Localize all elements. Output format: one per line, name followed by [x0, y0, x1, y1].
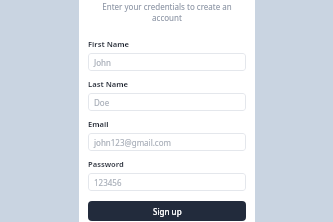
- staticText: Last Name: [88, 79, 129, 89]
- staticText: john123@gmail.com: [94, 137, 172, 148]
- button[interactable]: Doe: [88, 93, 246, 111]
- button[interactable]: John: [88, 53, 246, 71]
- button[interactable]: 123456: [88, 173, 246, 191]
- staticText: Doe: [94, 97, 110, 108]
- staticText: Password: [88, 159, 124, 169]
- staticText: John: [94, 57, 111, 68]
- staticText: Sign up: [153, 206, 182, 217]
- staticText: First Name: [88, 39, 130, 49]
- staticText: Email: [88, 119, 109, 129]
- button[interactable]: john123@gmail.com: [88, 133, 246, 151]
- staticText: 123456: [94, 177, 122, 188]
- staticText: Enter your credentials to create an acco…: [94, 1, 240, 24]
- button[interactable]: Sign up: [88, 201, 246, 221]
